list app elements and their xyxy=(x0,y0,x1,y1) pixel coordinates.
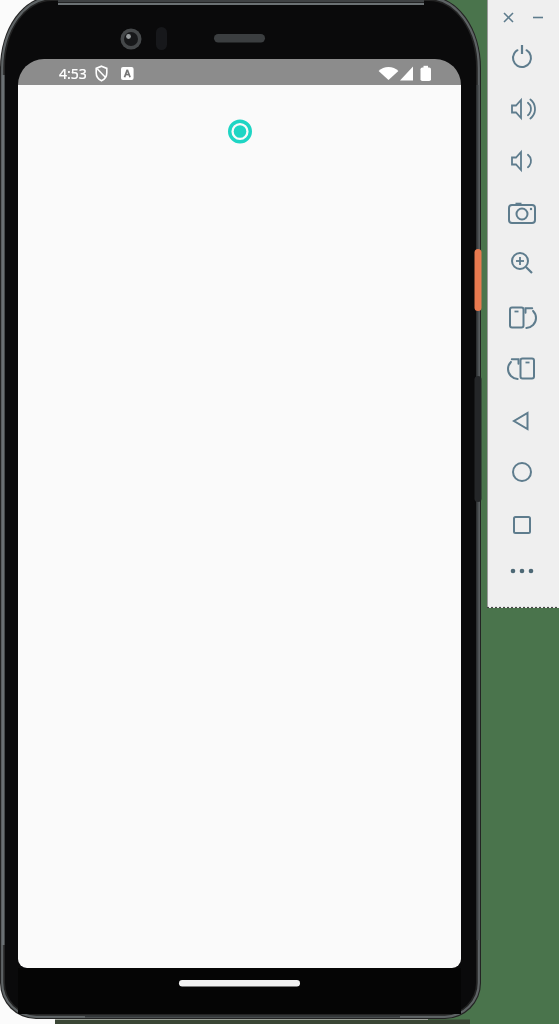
button[interactable] xyxy=(504,300,540,336)
button[interactable] xyxy=(504,553,540,589)
button[interactable] xyxy=(504,403,540,439)
button[interactable] xyxy=(504,351,540,387)
button[interactable] xyxy=(504,91,540,127)
button[interactable] xyxy=(504,454,540,490)
button[interactable] xyxy=(504,246,540,282)
button[interactable] xyxy=(226,118,254,146)
button[interactable] xyxy=(504,195,540,231)
button[interactable] xyxy=(504,507,540,543)
button[interactable] xyxy=(504,39,540,75)
button[interactable] xyxy=(504,143,540,179)
staticText: 4:53 xyxy=(59,64,87,83)
